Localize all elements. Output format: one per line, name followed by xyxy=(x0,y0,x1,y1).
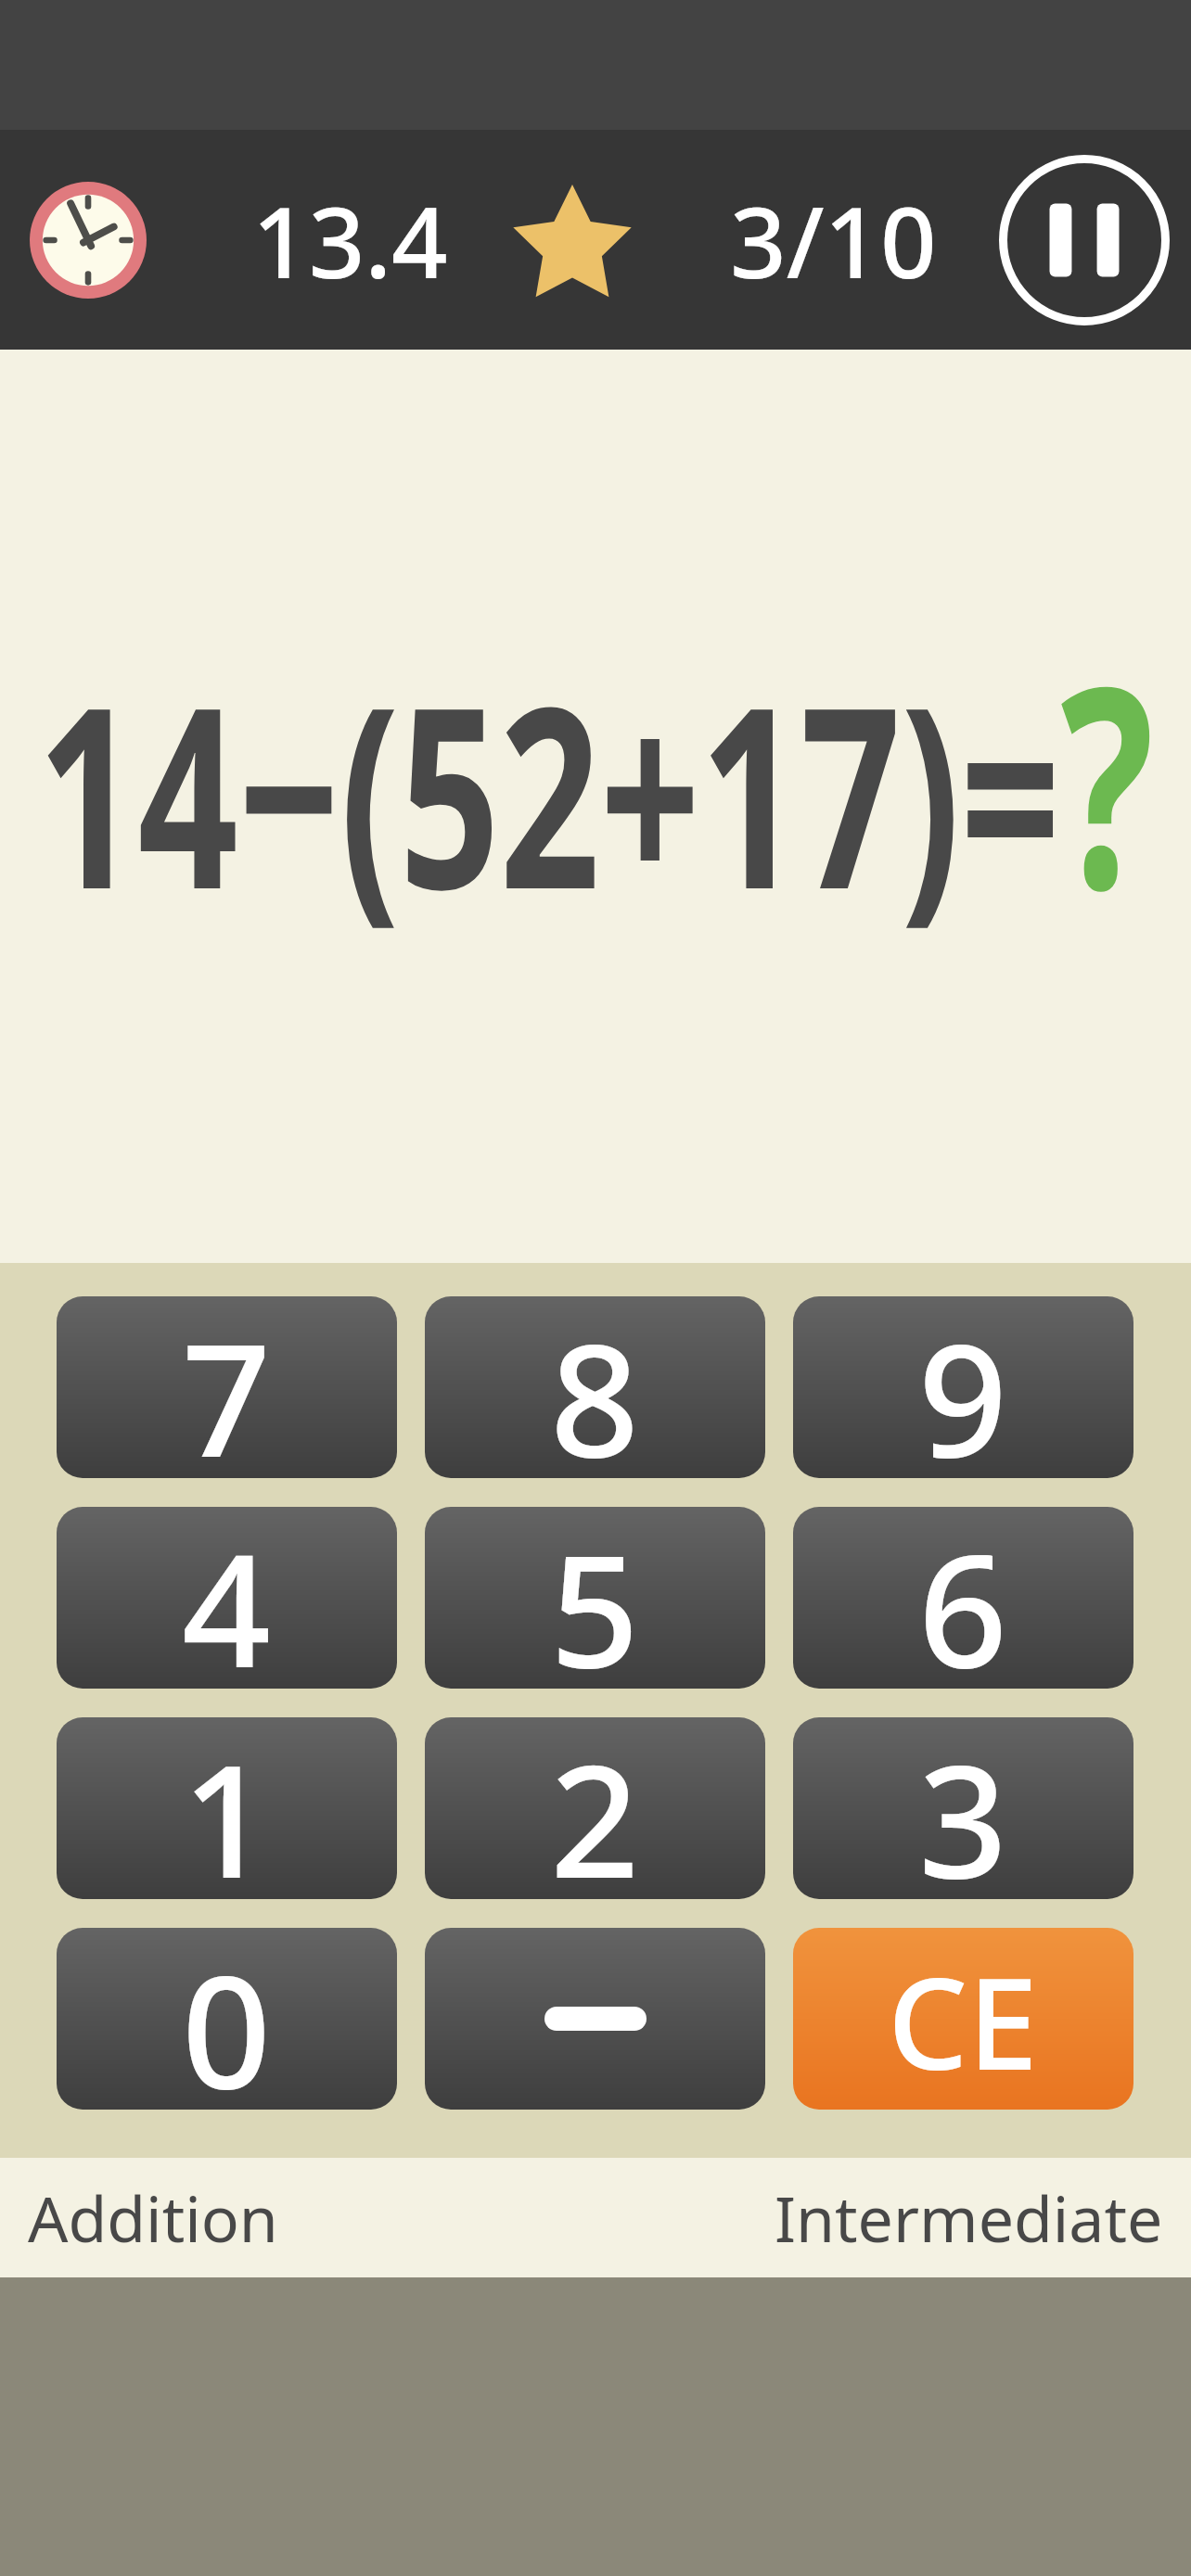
button[interactable]: 8 xyxy=(425,1296,765,1478)
staticText: 4 xyxy=(182,1507,272,1682)
button[interactable]: 0 xyxy=(57,1928,397,2110)
staticText: 1 xyxy=(182,1717,272,1893)
button[interactable]: 5 xyxy=(425,1507,765,1689)
staticText: CE xyxy=(888,1935,1039,2107)
staticText: 3 xyxy=(918,1717,1008,1893)
staticText: 7 xyxy=(182,1296,272,1472)
button[interactable] xyxy=(425,1928,765,2110)
button[interactable] xyxy=(999,155,1170,325)
button[interactable]: 7 xyxy=(57,1296,397,1478)
staticText: 5 xyxy=(550,1507,640,1682)
staticText: 13.4 xyxy=(252,173,448,307)
button[interactable]: 9 xyxy=(793,1296,1133,1478)
button[interactable]: 4 xyxy=(57,1507,397,1689)
button[interactable]: 3 xyxy=(793,1717,1133,1899)
staticText: 6 xyxy=(918,1507,1008,1682)
button[interactable]: 6 xyxy=(793,1507,1133,1689)
staticText: 0 xyxy=(182,1928,272,2103)
button[interactable]: CE xyxy=(793,1928,1133,2110)
button[interactable]: 1 xyxy=(57,1717,397,1899)
staticText: Intermediate xyxy=(775,2174,1163,2261)
staticText: Addition xyxy=(28,2174,278,2261)
staticText: 14−(52+17)=? xyxy=(0,591,1191,970)
staticText: 2 xyxy=(550,1717,640,1893)
staticText: 9 xyxy=(918,1296,1008,1472)
button[interactable]: 2 xyxy=(425,1717,765,1899)
staticText: 8 xyxy=(550,1296,640,1472)
staticText: 3/10 xyxy=(730,173,937,307)
